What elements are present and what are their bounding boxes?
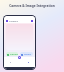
staticText: Gallery (24, 53, 32, 56)
button[interactable]: Photos (26, 60, 31, 65)
button[interactable]: Back (6, 20, 8, 22)
button[interactable] (6, 24, 33, 50)
button[interactable]: Settings (31, 20, 33, 22)
button[interactable]: Home (8, 60, 13, 65)
staticText: Camera (10, 53, 18, 56)
button[interactable]: Camera (6, 52, 18, 56)
staticText: Camera & Image Integration (9, 4, 55, 8)
button[interactable]: Gallery (20, 52, 33, 56)
staticText: Camera (9, 19, 18, 22)
button[interactable]: Capture (18, 56, 21, 59)
